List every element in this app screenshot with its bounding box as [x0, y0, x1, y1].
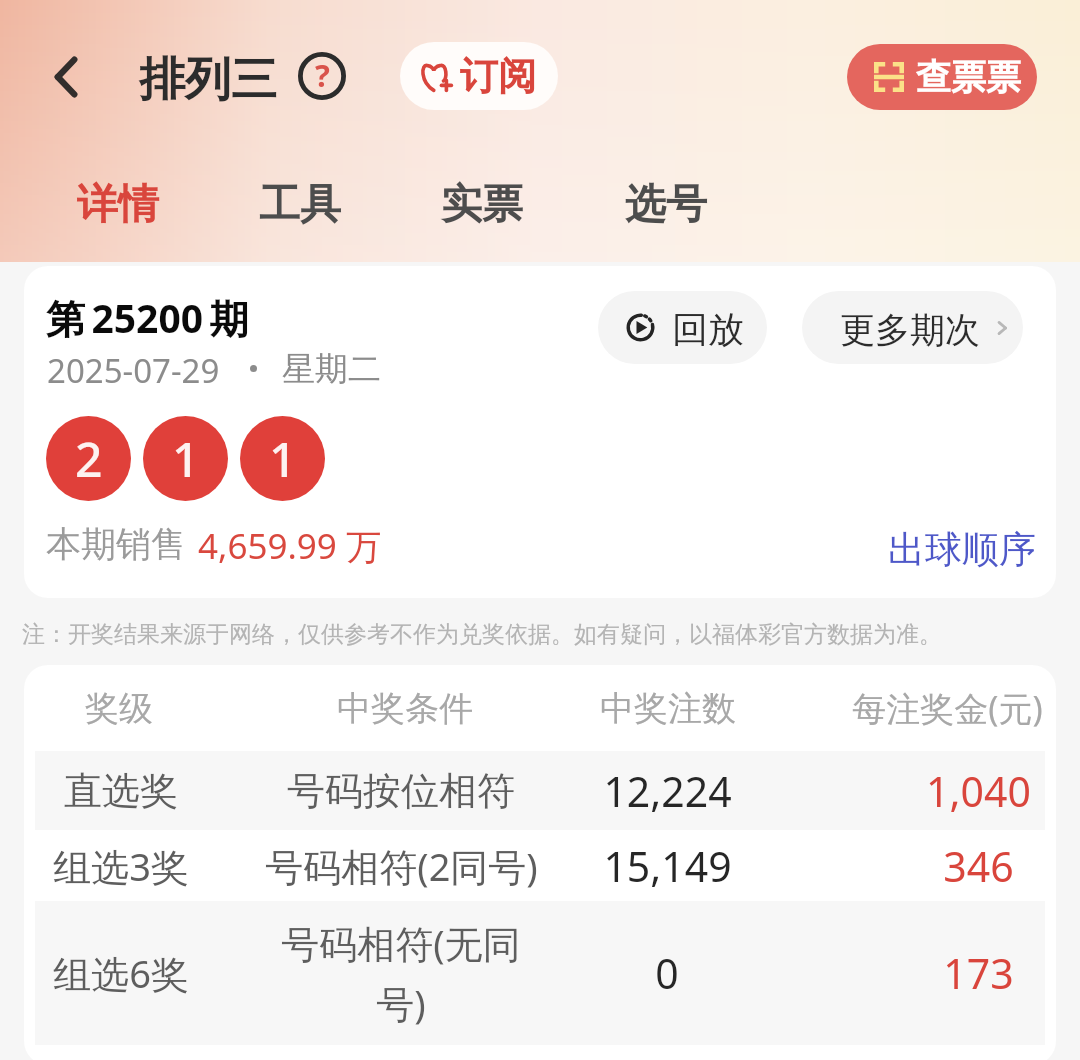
staticText: 注：开奖结果来源于网络，仅供参考不作为兑奖依据。如有疑问，以福体彩官方数据为准。 [22, 620, 942, 649]
button[interactable]: 直选奖 [24, 751, 1056, 830]
button[interactable]: 详情 [73, 175, 163, 235]
staticText: 2025-07-29 [47, 348, 220, 393]
staticText: 0 [655, 945, 679, 1001]
staticText: 每注奖金(元) [852, 685, 1043, 731]
staticText: 1 [172, 426, 200, 491]
button[interactable]: 工具 [255, 175, 345, 235]
staticText: 12,224 [603, 763, 732, 819]
staticText: 号码按位相符 [287, 767, 515, 815]
staticText: 直选奖 [64, 767, 178, 815]
staticText: 中奖注数 [600, 687, 736, 730]
button[interactable]: 出球顺序 [884, 522, 1040, 577]
staticText: 组选6奖 [53, 947, 189, 999]
staticText: 详情 [77, 179, 159, 231]
staticText: 查票票 [916, 55, 1021, 99]
staticText: 号码相符(2同号) [265, 840, 538, 892]
button[interactable]: 组选3奖 [24, 830, 1056, 901]
button[interactable]: Back [38, 48, 96, 106]
button[interactable]: 订阅 [400, 42, 558, 110]
staticText: 实票 [441, 179, 523, 231]
staticText: 本期销售 [46, 522, 186, 566]
staticText: 2 [75, 426, 103, 491]
staticText: 奖级 [85, 687, 153, 730]
staticText: 1 [269, 426, 297, 491]
staticText: 更多期次 [840, 308, 980, 352]
button[interactable]: 查票票 [847, 44, 1037, 110]
staticText: 回放 [672, 307, 744, 352]
staticText: 星期二 [282, 348, 381, 390]
button[interactable]: 选号 [621, 175, 711, 235]
button[interactable]: 奖级 [24, 665, 1056, 751]
staticText: ? [315, 54, 330, 96]
staticText: 173 [943, 945, 1014, 1001]
staticText: 4,659.99 万 [198, 522, 381, 570]
staticText: 号码相符(无同 号) [281, 917, 521, 1029]
staticText: 第 25200 期 [46, 291, 249, 344]
button[interactable]: 更多期次 [802, 291, 1023, 364]
button[interactable]: 回放 [598, 291, 767, 364]
staticText: 15,149 [603, 838, 732, 894]
staticText: 订阅 [460, 52, 536, 100]
button[interactable]: 实票 [437, 175, 527, 235]
staticText: 中奖条件 [337, 687, 473, 730]
staticText: 1,040 [926, 763, 1031, 819]
staticText: 排列三 [139, 51, 277, 109]
staticText: 选号 [625, 179, 707, 231]
staticText: 出球顺序 [888, 526, 1036, 573]
staticText: 组选3奖 [53, 840, 189, 892]
button[interactable]: 组选6奖 [24, 901, 1056, 1045]
staticText: 346 [943, 838, 1014, 894]
button[interactable]: Help [298, 52, 346, 100]
staticText: 工具 [259, 179, 341, 231]
